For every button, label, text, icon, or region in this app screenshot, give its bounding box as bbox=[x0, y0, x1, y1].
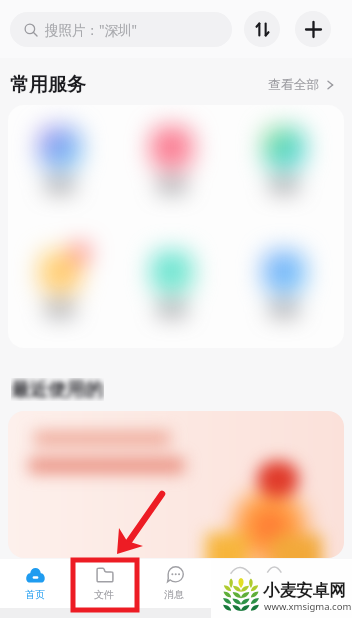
staticText: 最近使用的 bbox=[11, 378, 104, 401]
staticText: 搜照片："深圳" bbox=[45, 21, 138, 39]
button[interactable] bbox=[116, 127, 228, 204]
button[interactable]: 查看全部 bbox=[268, 77, 335, 93]
button[interactable]: 搜照片："深圳" bbox=[10, 12, 232, 47]
button[interactable]: 首页 bbox=[0, 559, 69, 608]
staticText: 查看全部 bbox=[268, 77, 320, 93]
staticText: 消息 bbox=[164, 588, 184, 601]
button[interactable] bbox=[228, 127, 340, 204]
staticText: 首页 bbox=[25, 588, 45, 601]
staticText: 小麦安卓网 bbox=[263, 580, 346, 601]
button[interactable] bbox=[228, 251, 340, 328]
staticText: 常用服务 bbox=[10, 73, 86, 97]
button[interactable] bbox=[8, 251, 116, 328]
staticText: www.xmsigma.com bbox=[264, 600, 352, 613]
button[interactable]: 文件 bbox=[69, 559, 139, 608]
staticText: 文件 bbox=[94, 588, 114, 601]
button[interactable] bbox=[116, 251, 228, 328]
button[interactable]: 消息 bbox=[139, 559, 209, 608]
button[interactable]: Sort bbox=[244, 11, 280, 47]
button[interactable] bbox=[8, 127, 116, 204]
button[interactable]: Add bbox=[295, 11, 331, 47]
